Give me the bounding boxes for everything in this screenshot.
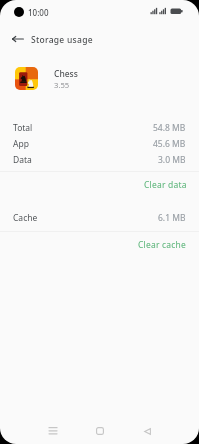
staticText: 3.0 MB	[158, 154, 186, 166]
staticText: 6.1 MB	[158, 212, 186, 224]
staticText: Clear data	[144, 179, 187, 189]
button[interactable]: Clear cache	[125, 236, 199, 252]
staticText: Cache	[13, 212, 38, 224]
staticText: 54.8 MB	[153, 122, 186, 134]
staticText: Chess	[54, 68, 78, 80]
staticText: 10:00	[28, 7, 49, 18]
staticText: Storage usage	[31, 34, 93, 46]
button[interactable]: Clear data	[131, 176, 199, 192]
staticText: Total	[13, 122, 33, 134]
staticText: 45.6 MB	[153, 138, 186, 150]
staticText: 3.55	[54, 80, 70, 90]
button[interactable]: Back	[6, 27, 30, 51]
button[interactable]: Recent apps	[41, 420, 65, 442]
staticText: App	[13, 138, 29, 150]
button[interactable]: Home	[88, 420, 112, 442]
button[interactable]: Chess	[0, 63, 199, 95]
button[interactable]: Back	[135, 420, 159, 442]
staticText: Clear cache	[138, 239, 187, 249]
staticText: Data	[13, 154, 32, 166]
